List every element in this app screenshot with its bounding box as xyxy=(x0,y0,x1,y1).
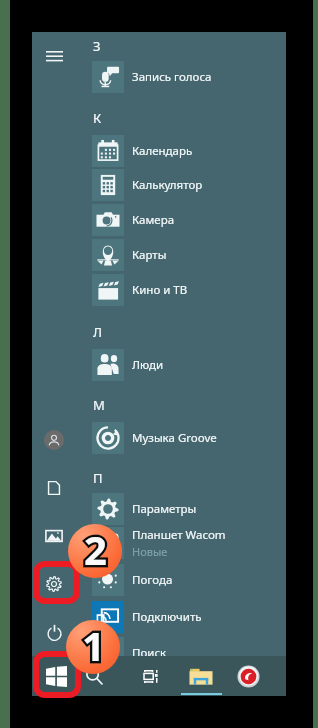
staticText: Музыка Groove xyxy=(132,430,217,446)
button[interactable]: Календарь xyxy=(92,135,286,167)
staticText: Калькулятор xyxy=(132,177,203,193)
button[interactable]: Pictures xyxy=(36,518,72,554)
staticText: 2 xyxy=(84,524,107,576)
staticText: Люди xyxy=(132,357,164,373)
staticText: Поиск xyxy=(132,645,167,661)
button[interactable]: Подключить xyxy=(92,601,286,633)
button[interactable]: Search xyxy=(70,656,118,696)
staticText: Планшет Wacom xyxy=(132,527,226,543)
button[interactable]: Поиск xyxy=(92,637,286,669)
button[interactable]: Калькулятор xyxy=(92,169,286,201)
button[interactable]: Start xyxy=(32,656,80,696)
button[interactable]: Музыка Groove xyxy=(92,422,286,454)
button[interactable]: Account xyxy=(44,430,64,450)
staticText: 1 xyxy=(82,620,105,672)
staticText: 2 xyxy=(84,524,107,576)
staticText: П xyxy=(93,469,103,487)
staticText: Подключить xyxy=(132,609,202,625)
button[interactable]: Power xyxy=(36,614,72,650)
button[interactable]: Settings xyxy=(36,566,72,602)
staticText: Кино и ТВ xyxy=(132,282,188,298)
button[interactable]: Планшет Wacom xyxy=(92,527,286,559)
staticText: Календарь xyxy=(132,143,193,159)
staticText: К xyxy=(93,109,102,127)
button[interactable]: Камера xyxy=(92,204,286,236)
staticText: Л xyxy=(93,323,103,341)
button[interactable]: Запись голоса xyxy=(92,61,286,93)
staticText: Новые xyxy=(132,544,168,559)
staticText: Параметры xyxy=(132,501,197,517)
button[interactable]: Параметры xyxy=(92,493,286,525)
staticText: 1 xyxy=(82,620,105,672)
button[interactable]: Menu xyxy=(36,38,72,74)
staticText: Погода xyxy=(132,572,173,588)
staticText: М xyxy=(93,396,105,414)
button[interactable]: Documents xyxy=(36,470,72,506)
staticText: Карты xyxy=(132,247,167,263)
staticText: Камера xyxy=(132,212,175,228)
staticText: Запись голоса xyxy=(132,69,212,85)
button[interactable]: Карты xyxy=(92,239,286,271)
staticText: З xyxy=(93,37,101,55)
button[interactable]: Кино и ТВ xyxy=(92,274,286,306)
button[interactable]: Погода xyxy=(92,564,286,596)
button[interactable]: Люди xyxy=(92,349,286,381)
button[interactable]: Task view xyxy=(126,656,174,696)
button[interactable]: File Explorer xyxy=(179,656,223,696)
button[interactable]: Protection app xyxy=(224,656,272,696)
